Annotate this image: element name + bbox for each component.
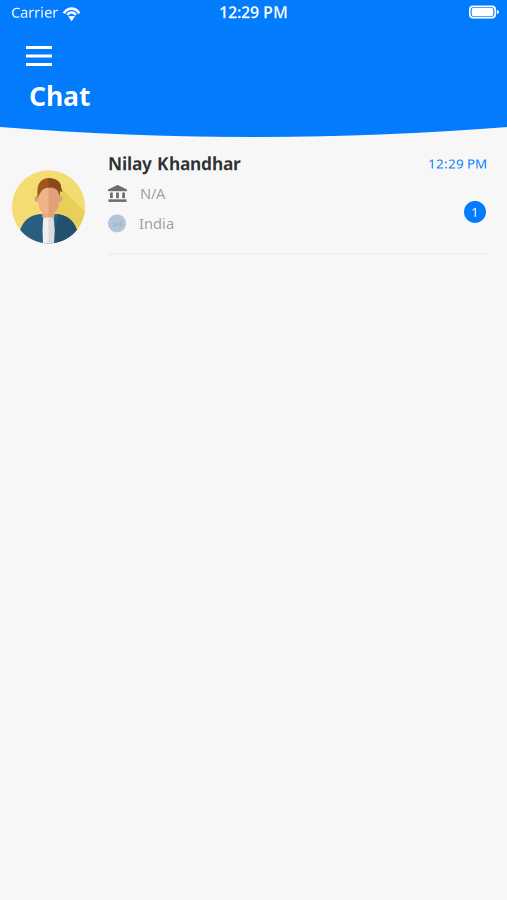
button[interactable]: Nilay Khandhar — [0, 150, 507, 254]
staticText: Nilay Khandhar — [108, 152, 241, 175]
staticText: 12:29 PM — [219, 1, 288, 23]
button[interactable]: Menu — [0, 36, 64, 76]
staticText: 12:29 PM — [428, 155, 487, 172]
staticText: Chat — [29, 78, 91, 113]
staticText: N/A — [140, 184, 165, 203]
staticText: 1 — [471, 203, 479, 221]
staticText: India — [139, 214, 174, 233]
staticText: Carrier — [11, 2, 58, 22]
